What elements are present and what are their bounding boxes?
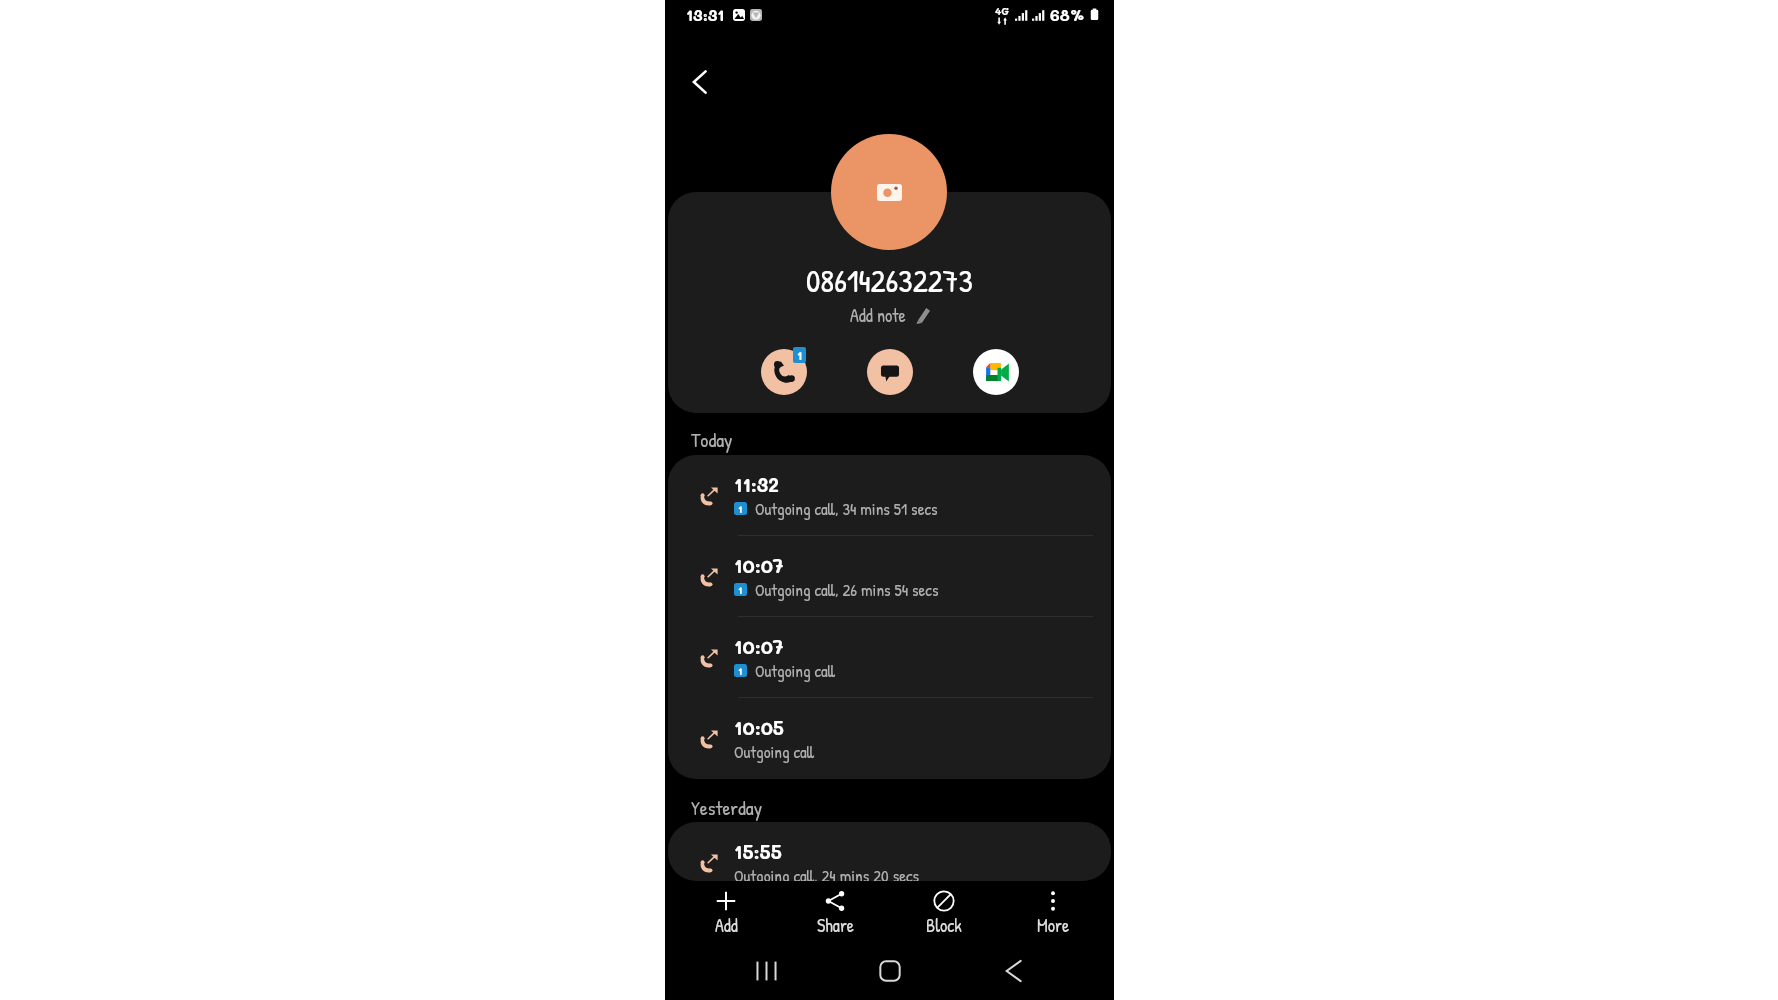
button[interactable]: 15:55 <box>668 822 1111 881</box>
button[interactable]: Share <box>787 884 883 943</box>
button[interactable]: Contact photo <box>831 134 947 250</box>
staticText: Outgoing call, 34 mins 51 secs <box>755 497 938 520</box>
button[interactable]: Add <box>678 884 774 943</box>
staticText: Outgoing call <box>755 659 836 682</box>
staticText: 086142632273 <box>806 259 973 302</box>
staticText: 1 <box>738 664 743 677</box>
staticText: 11:32 <box>734 472 779 497</box>
button[interactable]: 10:07 <box>668 617 1111 698</box>
staticText: Yesterday <box>691 794 763 821</box>
button[interactable]: Add note <box>844 301 936 329</box>
staticText: 10:07 <box>734 634 784 659</box>
button[interactable]: Back <box>991 949 1035 993</box>
staticText: Today <box>691 426 733 453</box>
staticText: 68% <box>1050 4 1086 25</box>
staticText: 1 <box>738 502 743 515</box>
staticText: Add <box>715 913 738 937</box>
staticText: 1 <box>738 583 743 596</box>
staticText: Outgoing call <box>734 740 815 763</box>
button[interactable]: Call <box>761 349 807 395</box>
button[interactable]: Recents <box>744 949 788 993</box>
button[interactable]: 10:07 <box>668 536 1111 617</box>
button[interactable]: Video call <box>973 349 1019 395</box>
staticText: 13:31 <box>686 4 725 25</box>
staticText: Outgoing call, 24 mins 20 secs <box>734 864 920 881</box>
button[interactable]: Block <box>896 884 992 943</box>
staticText: Outgoing call, 26 mins 54 secs <box>755 578 939 601</box>
button[interactable]: 10:05 <box>668 698 1111 779</box>
staticText: 4G <box>995 4 1010 17</box>
staticText: More <box>1037 913 1070 937</box>
staticText: Add note <box>850 303 906 327</box>
staticText: 1 <box>797 347 803 363</box>
staticText: 10:05 <box>734 715 784 740</box>
staticText: 15:55 <box>734 839 782 864</box>
button[interactable]: 11:32 <box>668 455 1111 536</box>
button[interactable]: Home <box>868 949 912 993</box>
staticText: Block <box>926 913 962 937</box>
staticText: Share <box>817 913 854 937</box>
staticText: 10:07 <box>734 553 784 578</box>
button[interactable]: Message <box>867 349 913 395</box>
button[interactable]: More <box>1005 884 1101 943</box>
button[interactable]: Back <box>679 61 721 103</box>
